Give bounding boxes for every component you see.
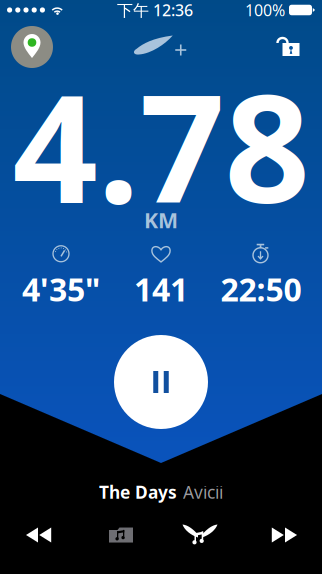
staticText: Avicii xyxy=(183,480,223,503)
staticText: The Days xyxy=(99,480,177,503)
button[interactable]: Now playing xyxy=(97,518,145,552)
button[interactable]: Next track xyxy=(259,518,309,552)
staticText: 22:50 xyxy=(220,268,301,310)
staticText: KM xyxy=(144,206,178,234)
button[interactable]: Lock screen xyxy=(265,22,311,66)
button[interactable]: Previous track xyxy=(14,518,64,552)
staticText: 141 xyxy=(134,268,188,310)
staticText: 下午 12:36 xyxy=(117,0,193,21)
button[interactable]: Pause run xyxy=(114,335,208,429)
staticText: 100% xyxy=(245,0,285,21)
staticText: 4'35" xyxy=(22,268,100,310)
staticText: 4.78 xyxy=(12,46,309,244)
button[interactable]: Route map xyxy=(6,23,58,71)
